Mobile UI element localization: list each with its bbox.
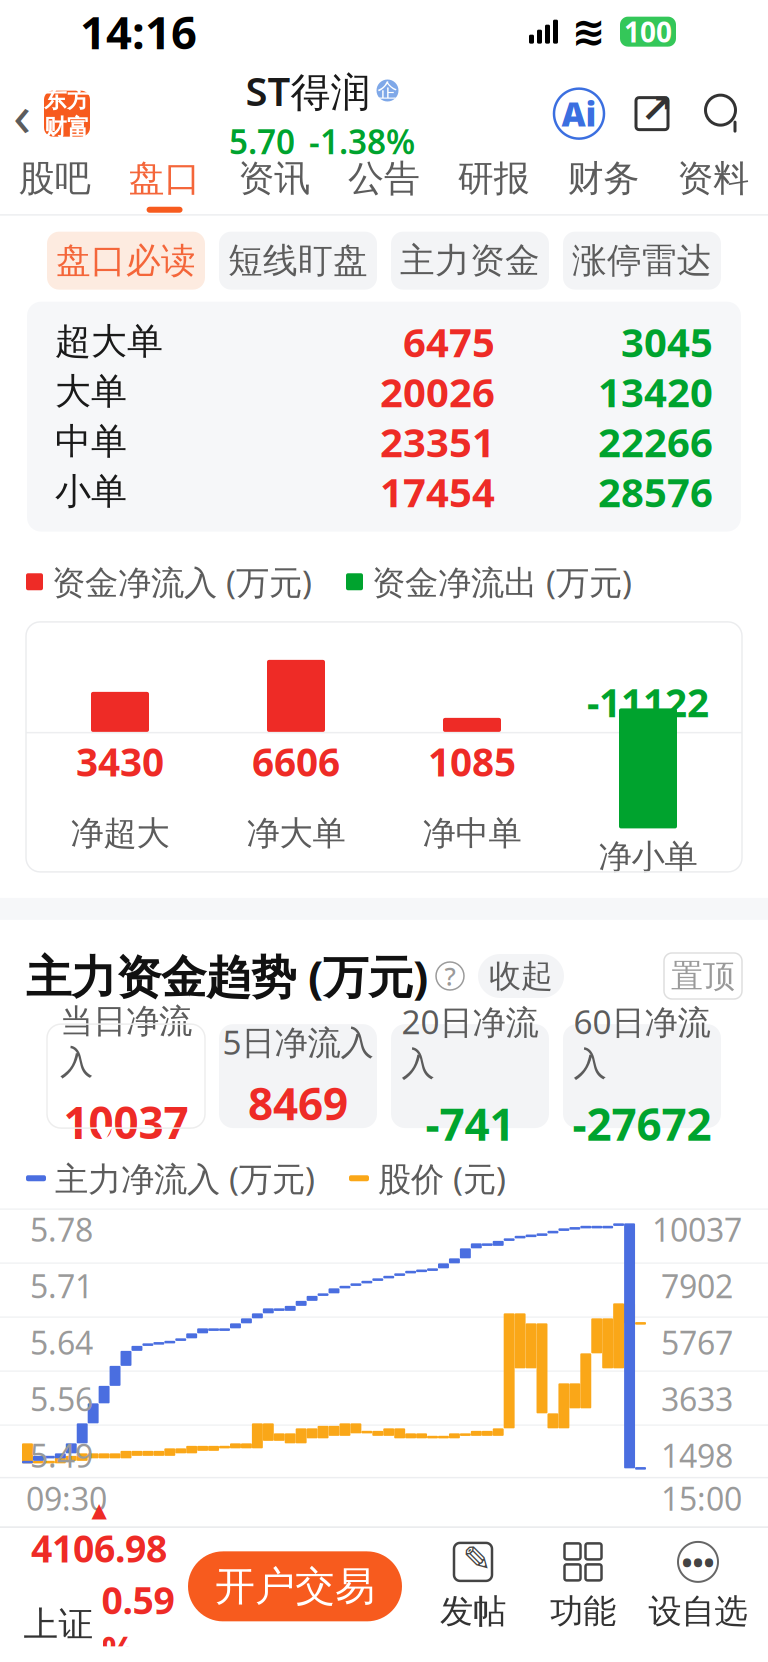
staticText: 20026	[380, 365, 495, 418]
staticText: 主力资金	[400, 239, 540, 282]
staticText: 股吧	[19, 156, 91, 201]
staticText: -27672	[572, 1094, 711, 1153]
staticText: 5.49	[30, 1434, 93, 1477]
staticText: 发帖	[440, 1591, 506, 1632]
staticText: 东	[44, 86, 67, 114]
staticText: 5.56	[30, 1378, 93, 1420]
staticText: 5.78	[30, 1208, 93, 1251]
staticText: 财	[44, 114, 67, 141]
button[interactable]: 资讯	[219, 154, 329, 216]
staticText: 研报	[458, 156, 530, 201]
staticText: 100	[624, 13, 672, 50]
staticText: 公告	[348, 156, 420, 201]
staticText: 功能	[550, 1591, 616, 1632]
staticText: 6475	[403, 315, 495, 368]
staticText: ▲	[91, 1499, 106, 1521]
button[interactable]: Help	[436, 962, 464, 990]
button[interactable]: 20日净流入	[391, 1024, 549, 1128]
staticText: 15:00	[661, 1477, 742, 1520]
button[interactable]: 功能	[528, 1531, 638, 1641]
staticText: 60日净流入	[573, 999, 710, 1084]
staticText: ‹	[13, 75, 31, 153]
staticText: •••	[681, 1542, 714, 1581]
staticText: 资金净流入 (万元)	[52, 560, 312, 604]
staticText: 10037	[652, 1208, 742, 1251]
button[interactable]: 东方财富	[44, 91, 90, 137]
staticText: 盘口	[129, 156, 201, 201]
staticText: 净小单	[598, 836, 697, 877]
staticText: 28576	[598, 465, 713, 518]
staticText: 3430	[76, 736, 164, 787]
staticText: 中单	[55, 419, 127, 464]
button[interactable]: ▲	[14, 1526, 184, 1646]
staticText: 财务	[567, 156, 639, 201]
button[interactable]: 短线盯盘	[219, 232, 377, 290]
staticText: 20日净流入	[401, 999, 538, 1084]
staticText: 5.70	[229, 119, 295, 163]
button[interactable]: 5日净流入	[219, 1024, 377, 1128]
staticText: 17454	[380, 465, 495, 518]
button[interactable]: AI assistant	[554, 89, 604, 139]
staticText: 6606	[252, 736, 340, 787]
button[interactable]: 开户交易	[188, 1551, 402, 1621]
button[interactable]: •••	[638, 1531, 758, 1641]
staticText: 资金净流出 (万元)	[372, 560, 632, 604]
button[interactable]: 公告	[329, 154, 439, 216]
button[interactable]: 60日净流入	[563, 1024, 721, 1128]
staticText: 3045	[621, 315, 713, 368]
staticText: 短线盯盘	[228, 239, 368, 282]
button[interactable]: Search	[700, 90, 748, 138]
staticText: 设自选	[648, 1591, 747, 1632]
staticText: 盘口必读	[56, 239, 196, 282]
staticText: 大单	[55, 369, 127, 414]
staticText: 置顶	[671, 956, 735, 996]
staticText: 1085	[428, 736, 516, 787]
staticText: 7902	[661, 1265, 733, 1307]
button[interactable]: 盘口必读	[47, 232, 205, 290]
staticText: 净大单	[246, 813, 345, 854]
staticText: ≋	[572, 9, 606, 54]
staticText: 8469	[248, 1074, 348, 1132]
staticText: -1.38%	[309, 119, 415, 163]
staticText: 5日净流入	[222, 1020, 373, 1064]
staticText: 涨停雷达	[572, 239, 712, 282]
staticText: 13420	[598, 365, 713, 418]
button[interactable]: 置顶	[664, 953, 742, 999]
staticText: ↗	[640, 86, 674, 131]
staticText: 当日净流入	[60, 1001, 192, 1083]
button[interactable]: 主力资金	[391, 232, 549, 290]
staticText: ✎	[462, 1539, 491, 1578]
button[interactable]: Back	[0, 86, 44, 142]
staticText: 净中单	[422, 813, 521, 854]
staticText: 10037	[63, 1093, 188, 1151]
staticText: 方	[67, 86, 90, 114]
staticText: 富	[67, 114, 90, 141]
staticText: 股价 (元)	[378, 1156, 506, 1200]
button[interactable]: 财务	[549, 154, 658, 216]
staticText: 开户交易	[215, 1562, 375, 1611]
button[interactable]: 研报	[439, 154, 549, 216]
staticText: ST得润	[245, 64, 370, 117]
staticText: 22266	[598, 415, 713, 468]
staticText: -741	[425, 1094, 514, 1153]
button[interactable]: 涨停雷达	[563, 232, 721, 290]
button[interactable]: 资料	[658, 154, 768, 216]
staticText: 5.64	[30, 1321, 93, 1364]
staticText: 4106.98	[31, 1523, 167, 1573]
button[interactable]: 收起	[478, 954, 564, 998]
button[interactable]: 盘口	[110, 154, 219, 216]
staticText: 主力净流入 (万元)	[55, 1156, 315, 1200]
staticText: 资讯	[238, 156, 310, 201]
button[interactable]: Share	[628, 90, 676, 138]
staticText: 5767	[661, 1321, 733, 1364]
button[interactable]: 当日净流入	[47, 1024, 205, 1128]
staticText: -11122	[587, 677, 709, 728]
button[interactable]: ✎	[418, 1531, 528, 1641]
button[interactable]: 股吧	[0, 154, 110, 216]
staticText: 超大单	[55, 319, 163, 364]
staticText: 小单	[55, 469, 127, 514]
staticText: 14:16	[80, 1, 197, 62]
staticText: 企	[377, 78, 397, 103]
staticText: 净超大	[70, 813, 169, 854]
staticText: 09:30	[26, 1477, 107, 1520]
